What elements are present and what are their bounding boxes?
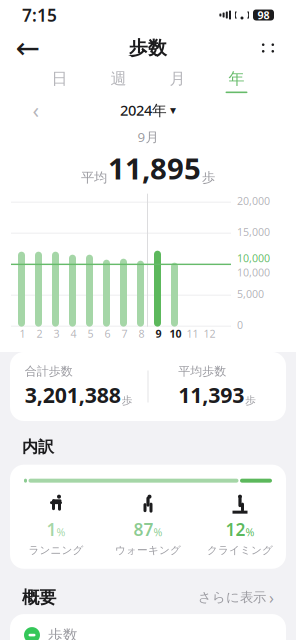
button[interactable]: Previous year	[20, 96, 52, 124]
staticText: 15,000	[237, 225, 270, 239]
staticText: 0	[237, 318, 243, 332]
staticText: 日	[51, 69, 67, 89]
staticText: 9	[155, 327, 161, 341]
staticText: 5,000	[237, 287, 264, 301]
staticText: 1	[46, 518, 56, 541]
staticText: 平均	[81, 169, 107, 186]
staticText: 11,393	[178, 381, 244, 409]
staticText: 9月	[137, 128, 158, 146]
staticText: %	[153, 525, 162, 539]
staticText: 12	[225, 518, 245, 541]
button[interactable]: Back	[8, 28, 48, 68]
button[interactable]: 日	[30, 66, 89, 96]
staticText: 歩数	[48, 626, 78, 640]
staticText: 3	[53, 327, 59, 341]
button[interactable]: 2024年	[110, 96, 186, 124]
staticText: 5	[87, 327, 93, 341]
staticText: 12	[203, 327, 215, 341]
staticText: クライミング	[207, 544, 273, 557]
button[interactable]: 年	[207, 66, 266, 96]
staticText: ウォーキング	[115, 544, 181, 557]
staticText: 87	[133, 518, 153, 541]
staticText: 2024年	[120, 100, 167, 120]
staticText: 98	[257, 8, 269, 22]
staticText: 合計歩数	[25, 364, 73, 379]
staticText: 3,201,388	[25, 381, 121, 409]
staticText: ▾	[170, 103, 176, 117]
staticText: 歩	[202, 169, 215, 186]
staticText: 歩数	[129, 36, 167, 59]
staticText: ランニング	[28, 544, 83, 557]
staticText: 歩	[245, 394, 256, 407]
staticText: 4	[70, 327, 76, 341]
staticText: 2	[36, 327, 42, 341]
staticText: %	[56, 525, 65, 539]
staticText: 内訳	[22, 437, 54, 457]
staticText: %	[245, 525, 254, 539]
staticText: ←	[15, 31, 40, 65]
staticText: 概要	[22, 587, 56, 608]
staticText: 7:15	[22, 3, 57, 26]
staticText: さらに表示	[198, 589, 266, 606]
button[interactable]: さらに表示	[198, 587, 274, 608]
staticText: 年	[228, 69, 244, 89]
staticText: 10	[169, 327, 181, 341]
staticText: 週	[110, 69, 126, 89]
staticText: 10,000	[237, 265, 270, 279]
button[interactable]: More options	[248, 28, 288, 68]
staticText: 月	[169, 69, 185, 89]
button[interactable]: 月	[148, 66, 207, 96]
staticText: ›	[269, 587, 274, 608]
staticText: 11	[186, 327, 198, 341]
staticText: 平均歩数	[178, 364, 226, 379]
staticText: ‹	[32, 96, 39, 124]
staticText: 11,895	[108, 149, 201, 188]
staticText: 6	[104, 327, 110, 341]
staticText: 7	[121, 327, 127, 341]
staticText: 1	[19, 327, 25, 341]
button[interactable]: 週	[89, 66, 148, 96]
staticText: 8	[138, 327, 144, 341]
staticText: 20,000	[237, 194, 270, 208]
staticText: 10,000	[237, 251, 270, 265]
staticText: 歩	[122, 394, 133, 407]
